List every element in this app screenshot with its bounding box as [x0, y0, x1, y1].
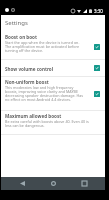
button[interactable]: Show volume control [1, 60, 105, 76]
staticText: Maximum allowed boost [5, 113, 62, 119]
button[interactable]: Toggle setting [94, 91, 100, 97]
button[interactable]: Back [12, 177, 32, 190]
button[interactable]: Maximum allowed boost [1, 111, 105, 134]
button[interactable]: Toggle setting [94, 65, 100, 71]
staticText: Settings [5, 19, 28, 27]
staticText: 3:30 [94, 8, 103, 14]
staticText: This moderates low and high frequency bo… [5, 85, 84, 103]
staticText: Show volume control [5, 66, 54, 72]
button[interactable]: Home [43, 177, 63, 190]
button[interactable]: Recent apps [74, 177, 94, 190]
staticText: Non-uniform boost [5, 79, 49, 85]
button[interactable]: Non-uniform boost [1, 77, 105, 110]
staticText: Be extra careful with boosts above 40. E… [5, 119, 89, 129]
button[interactable]: Toggle setting [94, 44, 100, 50]
staticText: Start the app when the device is turned … [5, 40, 80, 54]
button[interactable]: Boost on boot [1, 30, 105, 59]
staticText: Boost on boot [5, 34, 37, 40]
